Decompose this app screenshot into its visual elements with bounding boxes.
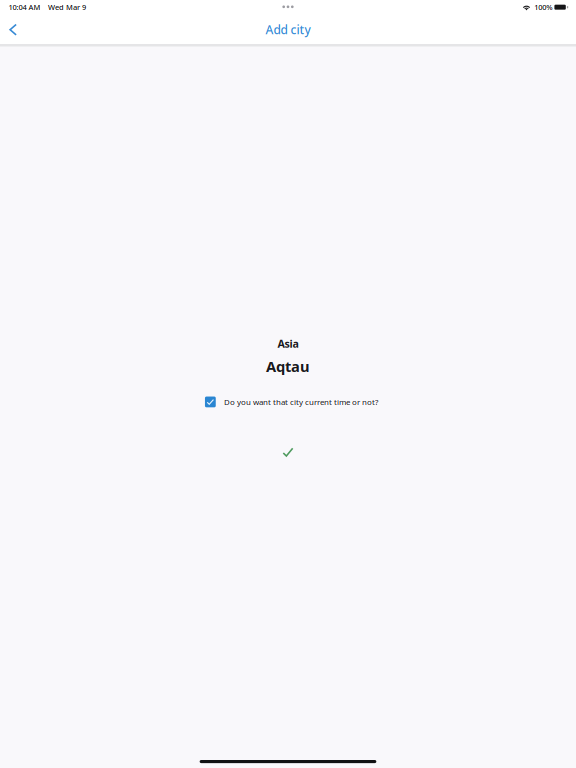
button[interactable]: Confirm: [276, 442, 300, 462]
button[interactable]: Do you want that city current time or no…: [205, 394, 378, 410]
staticText: Wed Mar 9: [48, 2, 86, 12]
button[interactable]: Back: [2, 17, 24, 43]
staticText: Aqtau: [266, 356, 310, 376]
staticText: 10:04 AM: [9, 2, 41, 12]
staticText: 100%: [534, 2, 552, 12]
staticText: Add city: [265, 21, 310, 38]
staticText: Asia: [277, 336, 298, 351]
staticText: Do you want that city current time or no…: [224, 397, 378, 407]
